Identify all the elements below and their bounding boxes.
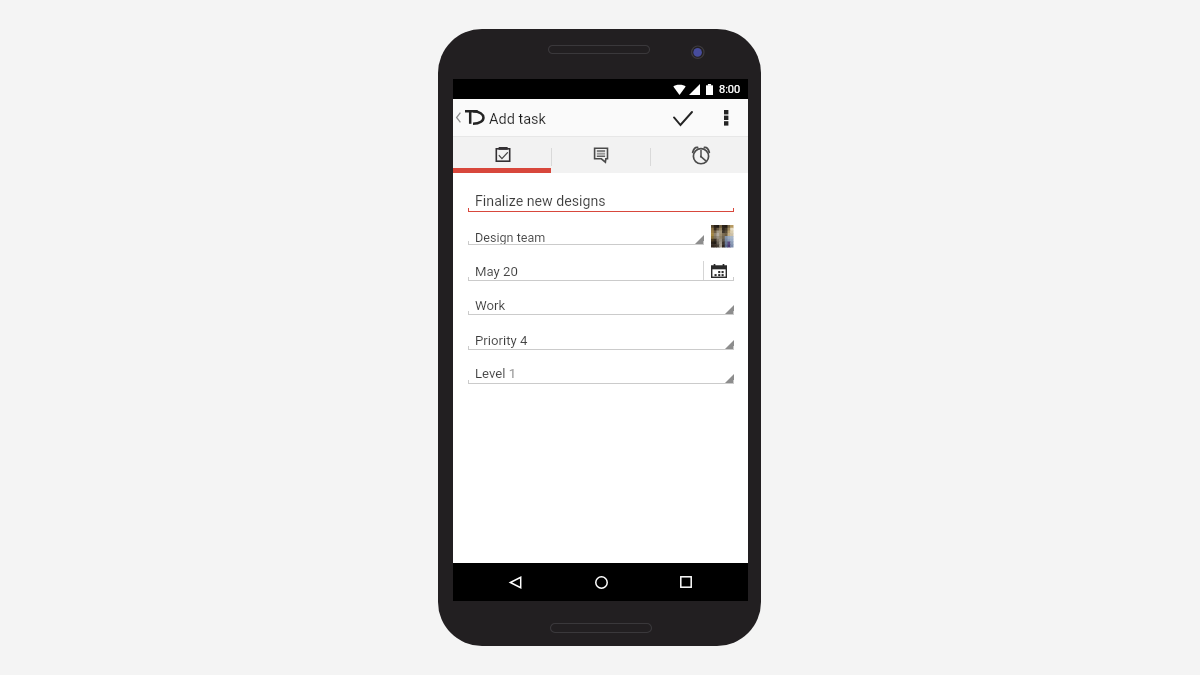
staticText: Priority 4: [475, 333, 528, 348]
button[interactable]: Project collaborators: [711, 225, 733, 247]
button[interactable]: Work: [468, 287, 734, 315]
button[interactable]: Back: [494, 563, 536, 601]
staticText: Level 1: [475, 366, 517, 381]
button[interactable]: Back to Todoist: [454, 99, 488, 135]
button[interactable]: Finalize new designs: [468, 184, 734, 212]
button[interactable]: May 20: [468, 253, 734, 281]
button[interactable]: Reminders: [650, 137, 748, 173]
button[interactable]: Design team: [468, 217, 704, 245]
staticText: Work: [475, 298, 506, 313]
button[interactable]: Level 1: [468, 356, 734, 384]
staticText: May 20: [475, 264, 518, 279]
staticText: 8:00: [719, 83, 741, 96]
button[interactable]: More options: [712, 99, 740, 135]
button[interactable]: Home: [580, 563, 622, 601]
button[interactable]: Priority 4: [468, 322, 734, 350]
button[interactable]: Comments: [552, 137, 650, 173]
button[interactable]: Task details: [453, 137, 552, 173]
button[interactable]: Save task: [665, 100, 701, 136]
staticText: Add task: [489, 111, 546, 128]
staticText: Finalize new designs: [475, 193, 606, 210]
staticText: Design team: [475, 230, 546, 245]
button[interactable]: Recent apps: [665, 563, 707, 601]
